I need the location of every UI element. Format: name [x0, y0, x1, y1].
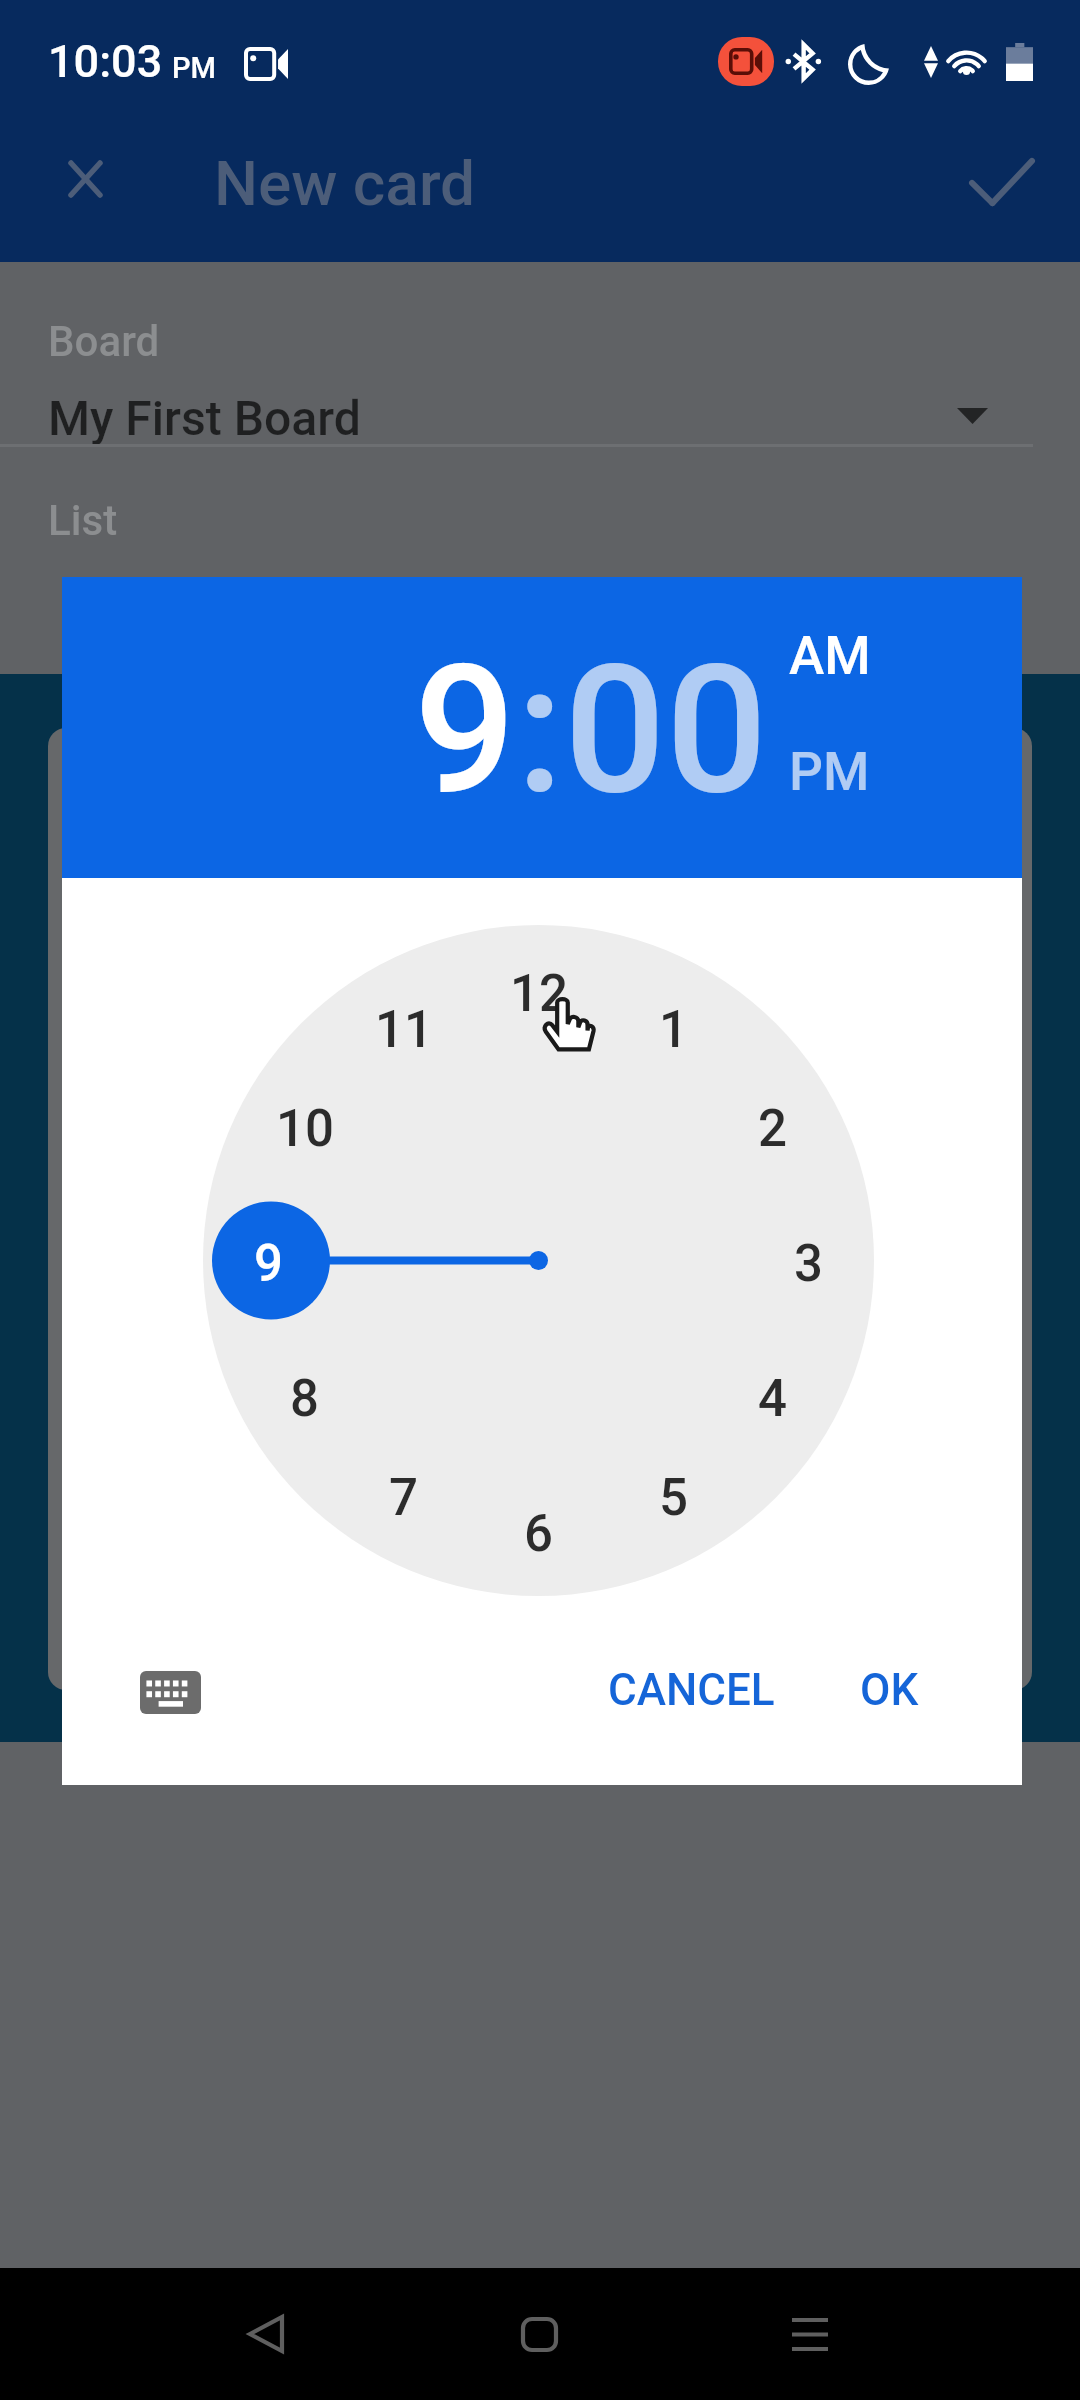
- button[interactable]: Close: [37, 131, 133, 227]
- button[interactable]: Back: [206, 2274, 326, 2394]
- staticText: 4: [758, 1369, 787, 1429]
- button[interactable]: AM: [789, 625, 871, 687]
- staticText: 10: [276, 1099, 334, 1159]
- button[interactable]: OK: [836, 1646, 943, 1734]
- staticText: 5: [659, 1468, 688, 1528]
- staticText: My First Board: [48, 390, 361, 446]
- staticText: :: [516, 625, 564, 835]
- staticText: 2: [758, 1099, 787, 1159]
- staticText: CANCEL: [608, 1664, 775, 1716]
- staticText: 6: [524, 1504, 553, 1564]
- staticText: 7: [389, 1468, 418, 1528]
- staticText: 8: [290, 1369, 319, 1429]
- staticText: 11: [375, 1000, 433, 1060]
- button[interactable]: CANCEL: [584, 1646, 799, 1734]
- button[interactable]: Home: [479, 2274, 599, 2394]
- staticText: PM: [172, 51, 216, 85]
- button[interactable]: Switch to text input: [124, 1646, 216, 1738]
- staticText: 10:03: [48, 35, 163, 88]
- staticText: 12: [510, 964, 568, 1024]
- button[interactable]: Recent apps: [750, 2274, 870, 2394]
- staticText: OK: [860, 1664, 919, 1716]
- staticText: 1: [659, 1000, 688, 1060]
- button[interactable]: PM: [789, 741, 870, 803]
- staticText: List: [48, 496, 118, 545]
- button[interactable]: 00: [564, 625, 768, 835]
- button[interactable]: 9: [414, 625, 516, 835]
- button[interactable]: Save: [954, 134, 1050, 230]
- staticText: Board: [48, 317, 160, 366]
- staticText: 9: [254, 1234, 283, 1294]
- staticText: 3: [794, 1234, 823, 1294]
- staticText: New card: [214, 147, 476, 220]
